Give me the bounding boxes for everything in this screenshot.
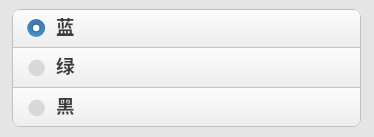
staticText: 黑 <box>56 92 75 119</box>
toggle[interactable]: Not selected <box>12 48 361 87</box>
staticText: 绿 <box>56 52 75 79</box>
toggle[interactable]: Selected <box>12 9 361 47</box>
toggle[interactable]: Not selected <box>12 88 361 127</box>
other: Not selected <box>27 58 47 78</box>
staticText: 蓝 <box>56 13 75 40</box>
other: Selected <box>27 18 47 38</box>
other: Not selected <box>27 98 47 118</box>
